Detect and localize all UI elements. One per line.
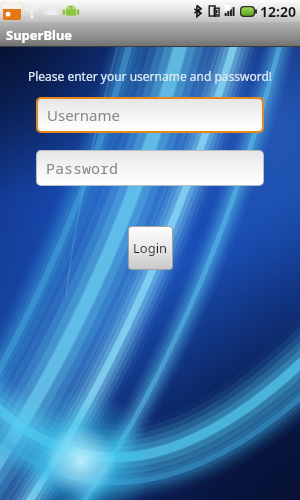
staticText: Please enter your username and password! [10, 68, 290, 84]
staticText: Password [46, 158, 119, 178]
button[interactable]: Login [129, 227, 172, 269]
staticText: 12:20 [260, 2, 296, 21]
staticText: SuperBlue [6, 26, 73, 44]
staticText: Username [47, 105, 120, 125]
staticText: Login [133, 239, 168, 257]
button[interactable]: Password [37, 151, 263, 185]
button[interactable]: Username [38, 99, 262, 131]
